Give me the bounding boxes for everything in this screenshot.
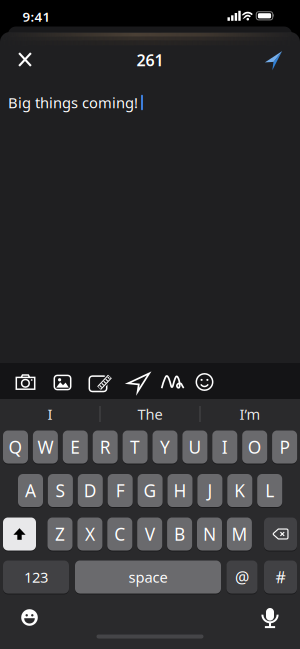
staticText: U — [188, 435, 201, 458]
staticText: O — [248, 435, 262, 458]
staticText: space — [128, 567, 167, 587]
button[interactable]: 123 — [3, 560, 69, 594]
button[interactable]: X — [77, 517, 102, 551]
staticText: B — [174, 522, 185, 545]
staticText: D — [84, 479, 97, 502]
button[interactable]: I’m — [202, 400, 298, 428]
button[interactable]: # — [264, 560, 297, 594]
button[interactable]: Q — [3, 430, 28, 464]
button[interactable]: Camera — [9, 368, 41, 396]
button[interactable]: space — [75, 560, 221, 594]
staticText: 123 — [24, 567, 48, 587]
staticText: The — [137, 404, 162, 424]
button[interactable]: N — [197, 517, 222, 551]
button[interactable]: Y — [152, 430, 177, 464]
staticText: 9:41 — [22, 8, 50, 25]
staticText: C — [114, 522, 125, 545]
staticText: T — [130, 435, 140, 458]
button[interactable]: L — [257, 473, 282, 507]
button[interactable]: Location — [121, 366, 156, 399]
button[interactable]: Draw — [154, 367, 190, 397]
staticText: Z — [55, 522, 65, 545]
staticText: Big things coming! — [8, 93, 138, 112]
button[interactable]: B — [167, 517, 192, 551]
staticText: L — [265, 479, 274, 502]
staticText: V — [145, 522, 155, 545]
staticText: I’m — [239, 404, 260, 424]
button[interactable]: Close — [8, 42, 41, 76]
button[interactable]: E — [63, 430, 88, 464]
button[interactable]: Edit — [83, 366, 117, 397]
staticText: Q — [8, 435, 22, 458]
staticText: G — [144, 479, 157, 502]
staticText: R — [100, 435, 111, 458]
staticText: F — [116, 479, 125, 502]
button[interactable]: M — [227, 517, 252, 551]
button[interactable]: I — [2, 400, 98, 428]
button[interactable]: U — [182, 430, 207, 464]
button[interactable]: @ — [226, 560, 257, 594]
button[interactable]: Delete — [264, 517, 297, 551]
button[interactable]: J — [197, 473, 222, 507]
button[interactable]: S — [48, 473, 73, 507]
staticText: W — [37, 435, 53, 458]
staticText: N — [203, 522, 216, 545]
staticText: A — [25, 479, 36, 502]
button[interactable]: H — [167, 473, 192, 507]
staticText: X — [85, 522, 95, 545]
button[interactable]: R — [93, 430, 118, 464]
button[interactable]: W — [33, 430, 58, 464]
staticText: S — [55, 479, 65, 502]
staticText: H — [173, 479, 186, 502]
button[interactable]: I — [212, 430, 237, 464]
staticText: @ — [235, 566, 249, 588]
button[interactable]: Photos — [48, 369, 77, 396]
staticText: E — [70, 435, 80, 458]
button[interactable]: V — [137, 517, 162, 551]
button[interactable]: C — [107, 517, 132, 551]
button[interactable]: O — [242, 430, 267, 464]
staticText: 261 — [136, 49, 163, 71]
button[interactable]: The — [102, 400, 198, 428]
staticText: Y — [160, 435, 170, 458]
button[interactable]: Dictation — [253, 599, 286, 635]
staticText: P — [280, 435, 290, 458]
button[interactable]: Send — [253, 40, 291, 79]
button[interactable]: G — [138, 473, 163, 507]
button[interactable]: T — [123, 430, 148, 464]
button[interactable]: F — [108, 473, 133, 507]
button[interactable]: P — [272, 430, 297, 464]
button[interactable]: A — [18, 473, 43, 507]
button[interactable]: D — [78, 473, 103, 507]
button[interactable]: Stickers — [190, 367, 219, 396]
button[interactable]: Z — [47, 517, 72, 551]
staticText: # — [275, 566, 285, 588]
button[interactable]: K — [227, 473, 252, 507]
staticText: J — [207, 479, 212, 502]
staticText: I — [222, 435, 228, 458]
staticText: I — [47, 404, 52, 424]
button[interactable]: Shift — [3, 517, 36, 551]
staticText: K — [234, 479, 245, 502]
staticText: M — [231, 522, 247, 545]
button[interactable]: Emoji — [13, 601, 46, 634]
